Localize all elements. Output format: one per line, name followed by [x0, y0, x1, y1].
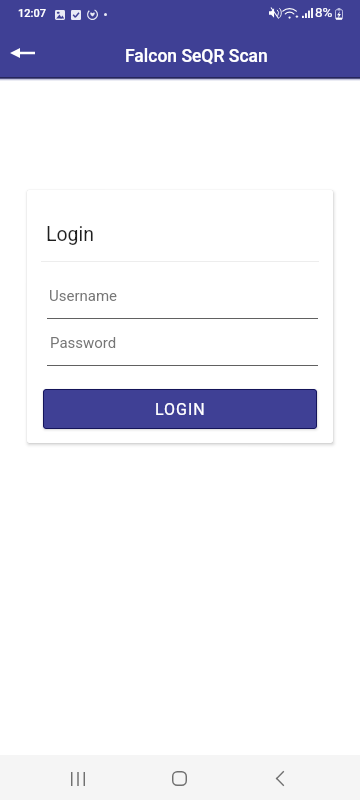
button[interactable]: Home — [155, 755, 203, 800]
button[interactable]: Navigate up — [0, 29, 44, 77]
staticText: 12:07 — [18, 7, 46, 20]
staticText: Password — [50, 334, 117, 352]
button[interactable]: LOGIN — [43, 389, 317, 429]
staticText: 8% — [315, 4, 333, 20]
staticText: LOGIN — [155, 400, 206, 419]
staticText: Falcon SeQR Scan — [125, 46, 268, 67]
staticText: Username — [49, 287, 118, 305]
button[interactable]: Back — [256, 755, 304, 800]
staticText: Login — [46, 223, 95, 246]
button[interactable]: Recent apps — [53, 755, 102, 800]
